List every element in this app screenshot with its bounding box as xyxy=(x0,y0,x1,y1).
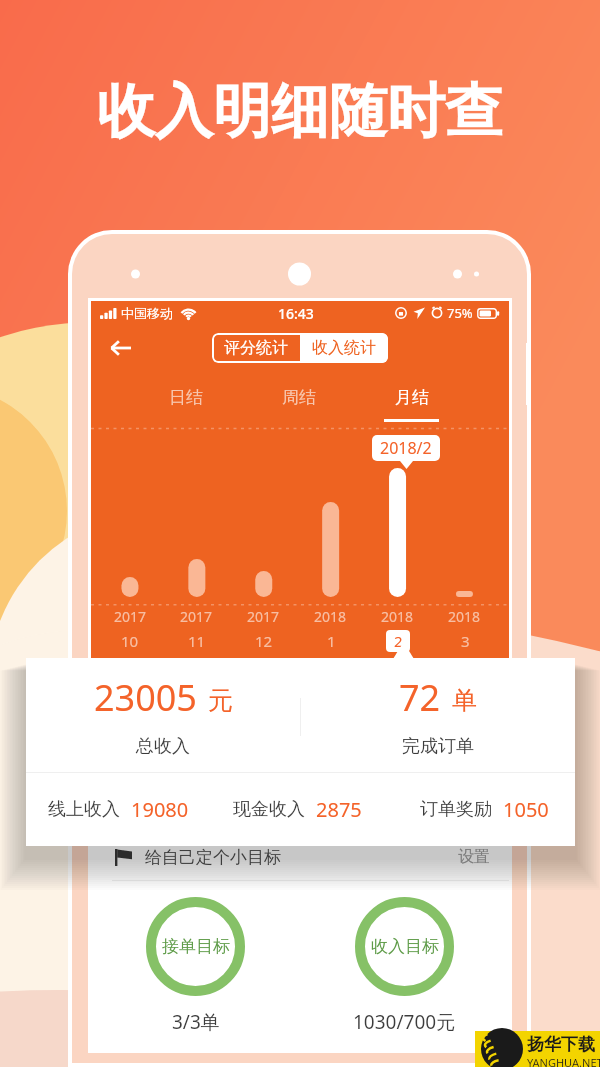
staticText: YANGHUA.NET xyxy=(527,1055,600,1067)
staticText: 周结 xyxy=(282,387,316,408)
staticText: 12 xyxy=(255,631,273,651)
staticText: 2018 xyxy=(314,607,347,626)
staticText: 2 xyxy=(394,631,403,651)
staticText: 11 xyxy=(188,631,206,651)
staticText: 2017 xyxy=(247,607,280,626)
staticText: 23005 xyxy=(94,673,197,722)
staticText: 元 xyxy=(208,685,233,716)
staticText: 收入统计 xyxy=(312,338,376,358)
button[interactable]: Back xyxy=(101,329,139,367)
button[interactable]: 周结 xyxy=(242,371,355,423)
staticText: 10 xyxy=(121,631,139,651)
button[interactable]: 评分统计 xyxy=(212,333,300,363)
button[interactable]: 23005 xyxy=(26,658,300,772)
staticText: 19080 xyxy=(131,796,189,823)
staticText: 设置 xyxy=(458,847,490,867)
staticText: 2018/2 xyxy=(380,437,432,459)
staticText: 月结 xyxy=(395,387,429,408)
staticText: 16:43 xyxy=(278,304,314,323)
staticText: 2875 xyxy=(316,796,362,823)
button[interactable]: 接单目标 xyxy=(146,897,245,1035)
staticText: 订单奖励 xyxy=(420,798,492,821)
staticText: 单 xyxy=(452,685,477,716)
staticText: 总收入 xyxy=(136,735,190,758)
staticText: 75% xyxy=(447,304,473,322)
staticText: 2018 xyxy=(448,607,481,626)
button[interactable]: 线上收入 xyxy=(48,796,189,823)
staticText: 评分统计 xyxy=(224,338,288,358)
button[interactable]: 给自己定个小目标 xyxy=(91,834,509,880)
staticText: 现金收入 xyxy=(233,798,305,821)
button[interactable]: 月结 xyxy=(355,371,468,423)
button[interactable]: 订单奖励 xyxy=(420,796,549,823)
staticText: 给自己定个小目标 xyxy=(145,847,281,868)
staticText: 日结 xyxy=(169,387,203,408)
button[interactable]: 72 xyxy=(300,658,575,772)
staticText: 接单目标 xyxy=(162,936,230,957)
staticText: 扬华下载 xyxy=(527,1034,595,1055)
staticText: 2018 xyxy=(381,607,414,626)
staticText: 完成订单 xyxy=(402,735,474,758)
button[interactable]: 收入目标 xyxy=(353,897,456,1035)
staticText: 72 xyxy=(399,673,441,722)
staticText: 收入明细随时查 xyxy=(97,75,503,148)
staticText: 3 xyxy=(461,631,470,651)
staticText: 线上收入 xyxy=(48,798,120,821)
staticText: 2017 xyxy=(180,607,213,626)
staticText: 1030/700元 xyxy=(353,1009,456,1035)
staticText: 收入目标 xyxy=(371,936,439,957)
staticText: 1 xyxy=(327,631,336,651)
staticText: 1050 xyxy=(503,796,549,823)
button[interactable]: 现金收入 xyxy=(233,796,362,823)
staticText: 3/3单 xyxy=(172,1009,220,1035)
staticText: 中国移动 xyxy=(121,305,173,321)
staticText: 2017 xyxy=(114,607,147,626)
button[interactable]: 收入统计 xyxy=(300,333,388,363)
button[interactable]: 日结 xyxy=(128,371,242,423)
